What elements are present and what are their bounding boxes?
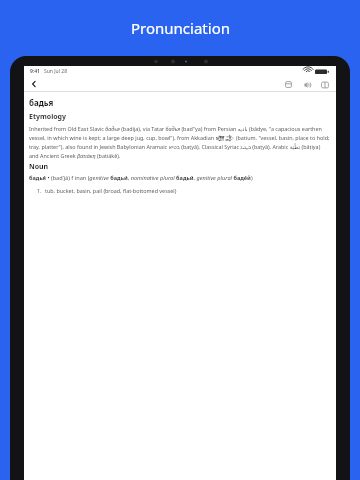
staticText: tub, bucket, basin, pail (broad, flat-bo… xyxy=(45,187,177,194)
staticText: Inherited from Old East Slavic бадья (ba… xyxy=(29,125,331,159)
staticText: Sun Jul 28 xyxy=(44,68,67,75)
staticText: Noun xyxy=(29,162,49,172)
button[interactable]: Play pronunciation xyxy=(300,78,313,91)
button[interactable]: Dictionary xyxy=(282,78,295,91)
staticText: бадья xyxy=(29,97,54,108)
button[interactable]: Show sidebar xyxy=(318,78,331,91)
button[interactable]: Back xyxy=(27,77,41,91)
staticText: бадья́ • (badʹjá) f inan (genitive бадьи… xyxy=(29,174,253,182)
staticText: 9:41 xyxy=(30,68,40,75)
staticText: 1. xyxy=(37,187,42,194)
staticText: Pronunciation xyxy=(131,18,230,38)
staticText: Etymology xyxy=(29,112,67,122)
